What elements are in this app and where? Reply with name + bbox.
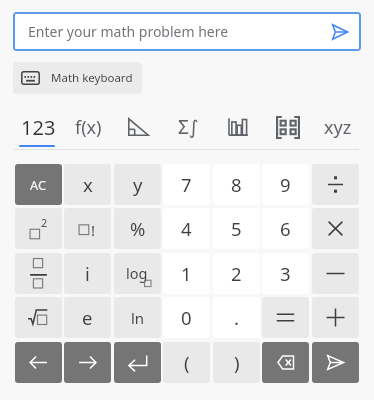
staticText: Enter your math problem here: [28, 22, 229, 41]
button[interactable]: Right: [64, 342, 111, 383]
staticText: ln: [131, 308, 145, 328]
button[interactable]: ln: [114, 297, 161, 338]
button[interactable]: 9: [262, 164, 309, 205]
staticText: 5: [231, 216, 242, 241]
button[interactable]: Plus: [312, 297, 359, 338]
staticText: x: [83, 172, 93, 197]
button[interactable]: Submit: [312, 342, 359, 383]
staticText: 2: [41, 215, 48, 230]
button[interactable]: Statistics: [213, 104, 263, 150]
staticText: y: [133, 172, 143, 197]
button[interactable]: %: [114, 208, 161, 249]
staticText: Σ∫: [178, 114, 199, 140]
button[interactable]: Matrix: [263, 104, 313, 150]
button[interactable]: Minus: [312, 253, 359, 294]
button[interactable]: 4: [163, 208, 210, 249]
button[interactable]: y: [114, 164, 161, 205]
staticText: 9: [280, 172, 291, 197]
button[interactable]: Enter your math problem here: [13, 12, 361, 51]
staticText: 3: [280, 261, 291, 286]
button[interactable]: Square root: [15, 297, 62, 338]
button[interactable]: Backspace: [262, 342, 309, 383]
button[interactable]: AC: [15, 164, 62, 205]
staticText: .: [234, 305, 239, 330]
button[interactable]: 2: [213, 253, 260, 294]
staticText: log: [126, 263, 148, 283]
button[interactable]: Divide: [312, 164, 359, 205]
staticText: 7: [181, 172, 192, 197]
button[interactable]: .: [213, 297, 260, 338]
staticText: ): [234, 350, 240, 375]
staticText: !: [91, 220, 96, 240]
button[interactable]: Variables: [313, 104, 362, 150]
button[interactable]: (: [163, 342, 210, 383]
button[interactable]: Equals: [262, 297, 309, 338]
staticText: xyz: [324, 115, 352, 140]
button[interactable]: Send: [327, 19, 353, 45]
button[interactable]: ): [213, 342, 260, 383]
button[interactable]: Logarithm: [114, 253, 161, 294]
button[interactable]: 1: [163, 253, 210, 294]
button[interactable]: Factorial: [64, 208, 111, 249]
button[interactable]: Calculus: [163, 104, 213, 150]
staticText: 6: [280, 216, 291, 241]
staticText: (: [184, 350, 190, 375]
button[interactable]: i: [64, 253, 111, 294]
staticText: 2: [231, 261, 242, 286]
button[interactable]: Geometry: [113, 104, 163, 150]
staticText: 4: [181, 216, 192, 241]
staticText: %: [130, 216, 146, 241]
button[interactable]: 0: [163, 297, 210, 338]
button[interactable]: Math keyboard: [13, 62, 142, 94]
button[interactable]: x: [64, 164, 111, 205]
staticText: f(x): [75, 115, 102, 140]
staticText: 123: [21, 114, 56, 141]
staticText: i: [85, 261, 90, 286]
staticText: Math keyboard: [51, 70, 133, 86]
button[interactable]: 7: [163, 164, 210, 205]
button[interactable]: Square: [15, 208, 62, 249]
button[interactable]: Left: [15, 342, 62, 383]
staticText: AC: [30, 176, 47, 193]
button[interactable]: 3: [262, 253, 309, 294]
button[interactable]: 6: [262, 208, 309, 249]
button[interactable]: Multiply: [312, 208, 359, 249]
staticText: 8: [231, 172, 242, 197]
button[interactable]: e: [64, 297, 111, 338]
button[interactable]: Functions: [63, 104, 113, 150]
button[interactable]: 5: [213, 208, 260, 249]
staticText: 1: [181, 261, 192, 286]
button[interactable]: Fraction: [15, 253, 62, 294]
button[interactable]: 8: [213, 164, 260, 205]
staticText: 0: [181, 305, 192, 330]
button[interactable]: Enter: [114, 342, 161, 383]
staticText: e: [82, 305, 93, 330]
button[interactable]: 123: [13, 104, 63, 150]
